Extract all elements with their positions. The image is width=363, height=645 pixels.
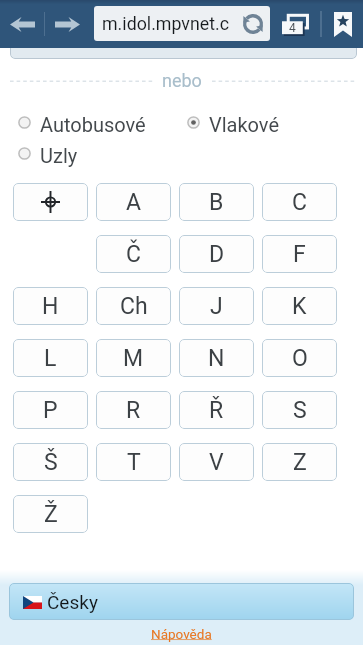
button[interactable]: Ž [13,495,88,533]
button[interactable]: Bookmarks [322,0,363,48]
button[interactable]: O [262,339,337,377]
staticText: B [209,189,224,216]
button[interactable]: B [179,183,254,221]
staticText: Vlakové [209,113,280,136]
staticText: Česky [47,591,98,613]
staticText: m.idol.mpvnet.c [102,13,230,34]
staticText: N [208,345,225,372]
staticText: Ch [120,293,148,320]
staticText: C [292,189,307,216]
button[interactable]: Autobusové [18,111,146,134]
staticText: Uzly [40,144,78,167]
button[interactable]: P [13,391,88,429]
other: Use my location [41,191,60,213]
button[interactable]: Back [0,0,44,48]
staticText: 4 [289,21,296,34]
staticText: Ř [209,397,224,424]
staticText: L [44,345,57,372]
button[interactable]: Š [13,443,88,481]
staticText: Č [126,241,141,268]
staticText: J [210,293,223,320]
staticText: O [292,345,308,372]
button[interactable]: J [179,287,254,325]
button[interactable]: H [13,287,88,325]
staticText: S [293,397,307,424]
staticText: M [123,345,144,372]
staticText: Ž [44,501,58,528]
button[interactable]: S [262,391,337,429]
staticText: P [43,397,58,424]
button[interactable]: C [262,183,337,221]
button[interactable]: Ch [96,287,171,325]
button[interactable]: Vlakové [187,111,280,134]
button[interactable]: Uzly [18,142,78,165]
button[interactable]: Forward [45,0,90,48]
button[interactable]: Nápověda [151,626,212,642]
button[interactable]: D [179,235,254,273]
button[interactable]: Česky [9,583,354,620]
staticText: D [209,241,225,268]
staticText: K [292,293,307,320]
button[interactable]: Č [96,235,171,273]
button[interactable]: A [96,183,171,221]
button[interactable]: L [13,339,88,377]
button[interactable]: F [262,235,337,273]
button[interactable]: T [96,443,171,481]
button[interactable]: K [262,287,337,325]
staticText: A [126,189,142,216]
staticText: nebo [162,70,202,91]
staticText: H [42,293,59,320]
staticText: Autobusové [40,113,146,136]
button[interactable]: R [96,391,171,429]
button[interactable]: V [179,443,254,481]
staticText: R [126,397,141,424]
staticText: T [127,449,141,476]
button[interactable]: Reload [241,12,265,36]
staticText: F [293,241,306,268]
button[interactable]: M [96,339,171,377]
button[interactable]: Tabs, 4 open [272,0,318,48]
button[interactable]: Use my location [13,183,88,221]
button[interactable]: Ř [179,391,254,429]
staticText: V [209,449,224,476]
staticText: Š [44,449,58,476]
button[interactable]: N [179,339,254,377]
button[interactable]: m.idol.mpvnet.c [94,6,270,41]
staticText: Z [293,449,307,476]
button[interactable]: Z [262,443,337,481]
